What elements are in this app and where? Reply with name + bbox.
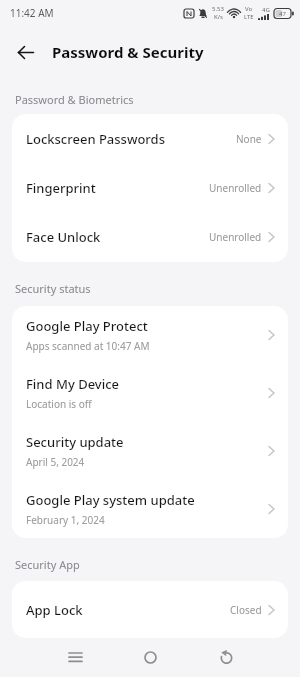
- button[interactable]: App Lock: [12, 581, 288, 638]
- staticText: Security App: [15, 557, 80, 572]
- staticText: Location is off: [26, 397, 92, 411]
- staticText: Fingerprint: [26, 179, 96, 197]
- staticText: Unenrolled: [209, 181, 262, 195]
- staticText: Lockscreen Passwords: [26, 130, 165, 148]
- staticText: Security status: [15, 281, 91, 296]
- staticText: Find My Device: [26, 375, 120, 393]
- staticText: 4G: [262, 6, 270, 14]
- button[interactable]: [113, 638, 188, 677]
- button[interactable]: Google Play Protect: [12, 306, 288, 364]
- button[interactable]: Face Unlock: [12, 212, 288, 261]
- button[interactable]: [37, 638, 113, 677]
- staticText: Password & Security: [52, 42, 204, 62]
- staticText: Google Play Protect: [26, 317, 148, 335]
- staticText: Password & Biometrics: [15, 92, 134, 107]
- staticText: None: [236, 132, 262, 146]
- staticText: 47: [279, 10, 286, 18]
- staticText: Unenrolled: [209, 230, 262, 244]
- button[interactable]: Security update: [12, 422, 288, 480]
- staticText: 5.53: [212, 5, 224, 13]
- staticText: Apps scanned at 10:47 AM: [26, 339, 150, 353]
- staticText: Google Play system update: [26, 491, 195, 509]
- button[interactable]: Fingerprint: [12, 163, 288, 212]
- staticText: Closed: [230, 603, 262, 617]
- staticText: Vo: [245, 5, 253, 13]
- button[interactable]: Google Play system update: [12, 480, 288, 538]
- button[interactable]: [0, 26, 52, 78]
- staticText: K/s: [214, 13, 223, 21]
- button[interactable]: [188, 638, 263, 677]
- staticText: App Lock: [26, 601, 83, 619]
- button[interactable]: Find My Device: [12, 364, 288, 422]
- staticText: LTE: [244, 13, 254, 21]
- staticText: 11:42 AM: [10, 6, 54, 20]
- staticText: Face Unlock: [26, 228, 101, 246]
- staticText: February 1, 2024: [26, 513, 105, 527]
- button[interactable]: Lockscreen Passwords: [12, 114, 288, 163]
- staticText: Security update: [26, 433, 124, 451]
- staticText: April 5, 2024: [26, 455, 85, 469]
